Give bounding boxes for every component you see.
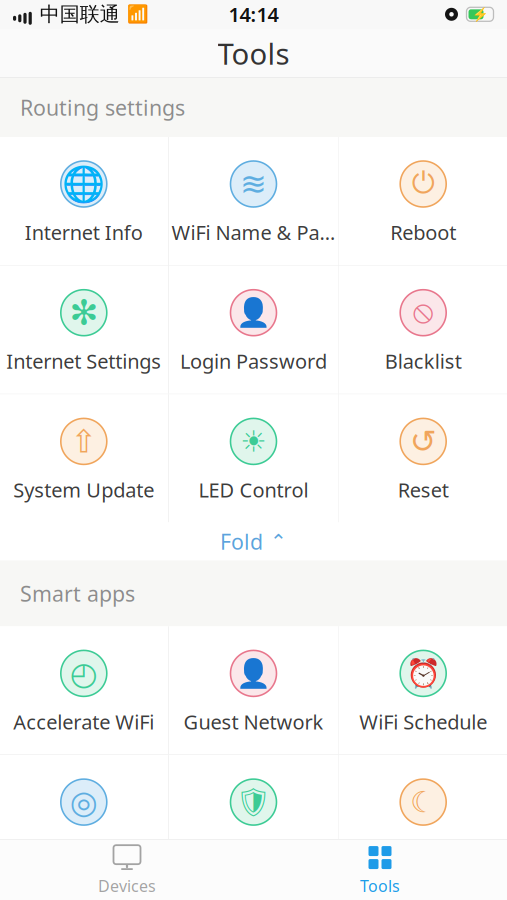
button[interactable]: 👤 xyxy=(169,626,338,754)
staticText: ⦸ xyxy=(413,297,434,328)
button[interactable]: 👤 xyxy=(169,266,338,394)
button[interactable]: Tools xyxy=(253,840,506,900)
staticText: WiFi Schedule xyxy=(359,708,487,735)
staticText: ☀ xyxy=(240,425,266,458)
staticText: Fold xyxy=(220,527,263,555)
staticText: Reset xyxy=(398,476,449,503)
staticText: 👤 xyxy=(236,657,271,689)
staticText: Internet Info xyxy=(25,219,143,246)
staticText: ◎ xyxy=(70,784,98,820)
staticText: ✻ xyxy=(69,293,98,332)
button[interactable]: ↺ xyxy=(339,394,507,522)
staticText: ⏰ xyxy=(406,657,441,689)
staticText: Routing settings xyxy=(20,93,185,122)
staticText: System Update xyxy=(13,476,154,503)
staticText: Guest Network xyxy=(183,708,323,735)
button[interactable]: Devices xyxy=(0,840,253,900)
staticText: Devices xyxy=(98,875,156,896)
button[interactable]: ☾ xyxy=(339,755,507,883)
staticText: 🛡 xyxy=(235,786,271,818)
button[interactable]: 🛡 xyxy=(169,755,338,883)
staticText: ⏻ xyxy=(412,170,435,198)
button[interactable]: ⦸ xyxy=(339,266,507,394)
staticText: 📶 xyxy=(127,4,149,24)
button[interactable]: ✻ xyxy=(0,266,168,394)
button[interactable]: ⇧ xyxy=(0,394,168,522)
button[interactable]: ◴ xyxy=(0,626,168,754)
staticText: ◴ xyxy=(70,655,98,691)
staticText: Smart apps xyxy=(20,579,135,607)
staticText: Tools xyxy=(360,875,400,896)
button[interactable]: ⏰ xyxy=(339,626,507,754)
staticText: ≋ xyxy=(240,166,267,202)
button[interactable]: ⏻ xyxy=(339,137,507,265)
staticText: Accelerate WiFi xyxy=(13,708,154,735)
staticText: Reboot xyxy=(390,219,456,246)
button[interactable]: Fold xyxy=(0,522,507,560)
staticText: 中国联通 xyxy=(40,2,120,27)
button[interactable]: ◎ xyxy=(0,755,168,883)
staticText: ↺ xyxy=(410,423,437,459)
button[interactable]: 🌐 xyxy=(0,137,168,265)
staticText: ☾ xyxy=(410,785,436,819)
button[interactable]: ≋ xyxy=(169,137,338,265)
staticText: ⌃ xyxy=(270,530,287,553)
staticText: Internet Settings xyxy=(6,348,161,374)
staticText: Tools xyxy=(217,34,289,73)
staticText: ⚡ xyxy=(471,7,488,22)
staticText: 🌐 xyxy=(62,164,105,204)
button[interactable]: ☀ xyxy=(169,394,338,522)
staticText: 14:14 xyxy=(228,1,278,28)
staticText: WiFi Name & Pa… xyxy=(171,219,335,246)
staticText: Login Password xyxy=(180,348,327,374)
staticText: LED Control xyxy=(198,476,308,503)
staticText: Blacklist xyxy=(385,348,462,374)
staticText: 👤 xyxy=(236,297,271,329)
staticText: ⇧ xyxy=(70,423,97,459)
